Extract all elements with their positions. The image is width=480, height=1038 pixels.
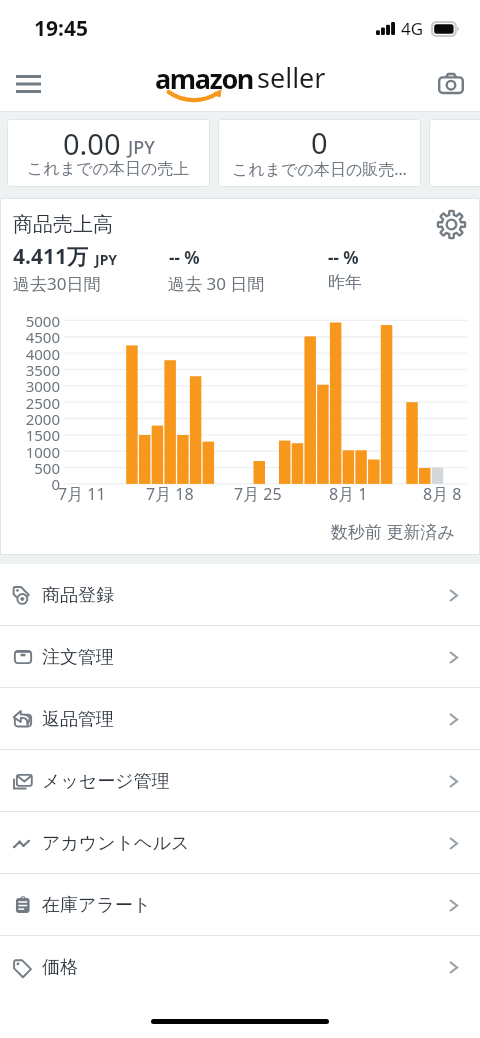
staticText: 数秒前 更新済み [331, 520, 455, 543]
staticText: 4500 [0, 327, 60, 347]
staticText: 7月 25 [234, 483, 282, 505]
staticText: 0 [311, 123, 328, 162]
staticText: 過去 30 日間 [168, 272, 265, 295]
staticText: 0 [0, 474, 60, 494]
staticText: これまでの本日の販売… [232, 158, 407, 180]
staticText: seller [257, 59, 326, 96]
staticText: -- % [169, 246, 200, 269]
staticText: 1000 [0, 442, 60, 462]
staticText: 7月 18 [146, 483, 194, 505]
staticText: 4000 [0, 344, 60, 364]
staticText: JPY [95, 250, 118, 269]
staticText: 商品売上高 [13, 212, 113, 237]
staticText: amazon [155, 60, 254, 97]
button[interactable]: Settings [431, 204, 471, 244]
button[interactable]: 価格 [0, 936, 480, 998]
staticText: 在庫アラート [42, 894, 152, 917]
button[interactable]: アカウントヘルス [0, 812, 480, 874]
staticText: 価格 [42, 956, 78, 979]
staticText: 5000 [0, 311, 60, 331]
staticText: JPY [128, 135, 155, 160]
button[interactable]: 商品登録 [0, 564, 480, 626]
staticText: 2500 [0, 393, 60, 413]
staticText: 4.411万 [13, 242, 88, 271]
staticText: 昨年 [328, 272, 362, 293]
staticText: 3000 [0, 376, 60, 396]
button[interactable]: 0 [218, 119, 421, 187]
staticText: 500 [0, 458, 60, 478]
staticText: 7月 11 [58, 483, 106, 505]
button[interactable]: Camera [427, 60, 475, 108]
staticText: 返品管理 [42, 708, 114, 731]
staticText: 注文管理 [42, 646, 114, 669]
staticText: 4G [401, 17, 424, 40]
button[interactable] [429, 119, 480, 187]
staticText: -- % [328, 246, 359, 269]
button[interactable]: 在庫アラート [0, 874, 480, 936]
staticText: 3500 [0, 360, 60, 380]
staticText: メッセージ管理 [42, 770, 170, 793]
staticText: 19:45 [34, 14, 88, 43]
button[interactable]: Menu [4, 60, 52, 108]
button[interactable]: 注文管理 [0, 626, 480, 688]
staticText: 8月 1 [329, 483, 368, 505]
staticText: アカウントヘルス [42, 832, 190, 855]
button[interactable]: 0.00 [7, 119, 210, 187]
button[interactable]: メッセージ管理 [0, 750, 480, 812]
button[interactable]: 返品管理 [0, 688, 480, 750]
staticText: 0.00 [63, 124, 121, 163]
staticText: 8月 8 [423, 483, 462, 505]
staticText: これまでの本日の売上 [27, 159, 190, 179]
staticText: 商品登録 [42, 584, 114, 607]
staticText: 過去30日間 [13, 272, 101, 295]
staticText: 2000 [0, 409, 60, 429]
staticText: 1500 [0, 425, 60, 445]
